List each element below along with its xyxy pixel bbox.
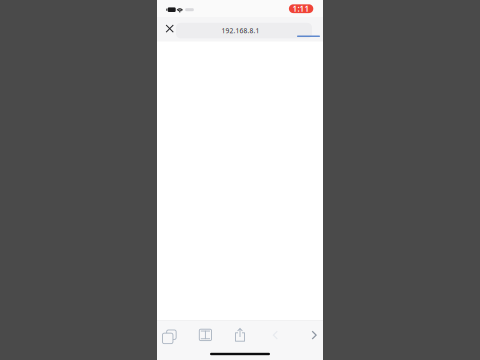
button[interactable]: Recording 1:11 — [289, 3, 313, 14]
button[interactable]: Bookmarks — [199, 329, 211, 341]
button[interactable]: Close — [160, 19, 180, 39]
button[interactable]: Tabs — [160, 328, 175, 342]
button[interactable]: Back — [273, 330, 278, 340]
button[interactable]: 192.168.8.1 — [176, 23, 312, 38]
staticText: 1:11 — [293, 3, 310, 14]
staticText: 192.168.8.1 — [221, 26, 259, 35]
button[interactable]: Share — [235, 328, 245, 342]
button[interactable]: Forward — [311, 330, 317, 340]
